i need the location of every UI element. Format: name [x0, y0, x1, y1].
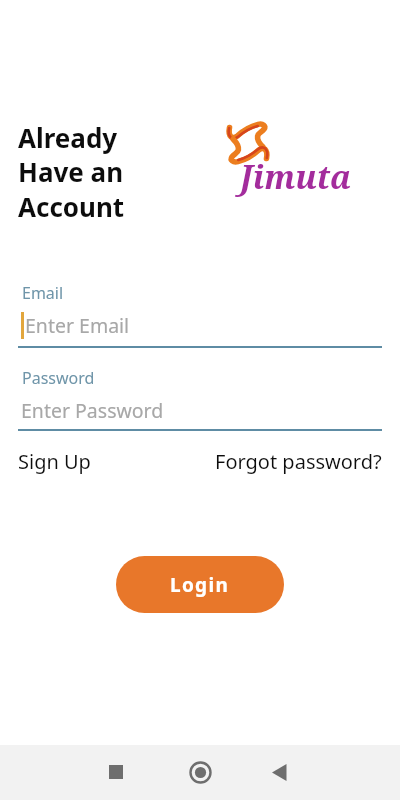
staticText: Enter Email [25, 312, 130, 339]
button[interactable] [18, 305, 382, 348]
staticText: Password [22, 367, 95, 389]
button[interactable] [259, 752, 299, 792]
button[interactable] [180, 752, 220, 792]
staticText: Email [22, 282, 64, 304]
staticText: Enter Password [21, 397, 164, 424]
staticText: Already Have an Account [18, 120, 125, 225]
button[interactable]: Login [116, 556, 284, 613]
button[interactable] [18, 390, 382, 431]
button[interactable] [96, 752, 136, 792]
staticText: Jimuta [240, 155, 352, 199]
staticText: Login [170, 572, 230, 598]
button[interactable]: Sign Up [18, 448, 91, 475]
button[interactable]: Forgot password? [215, 448, 382, 475]
